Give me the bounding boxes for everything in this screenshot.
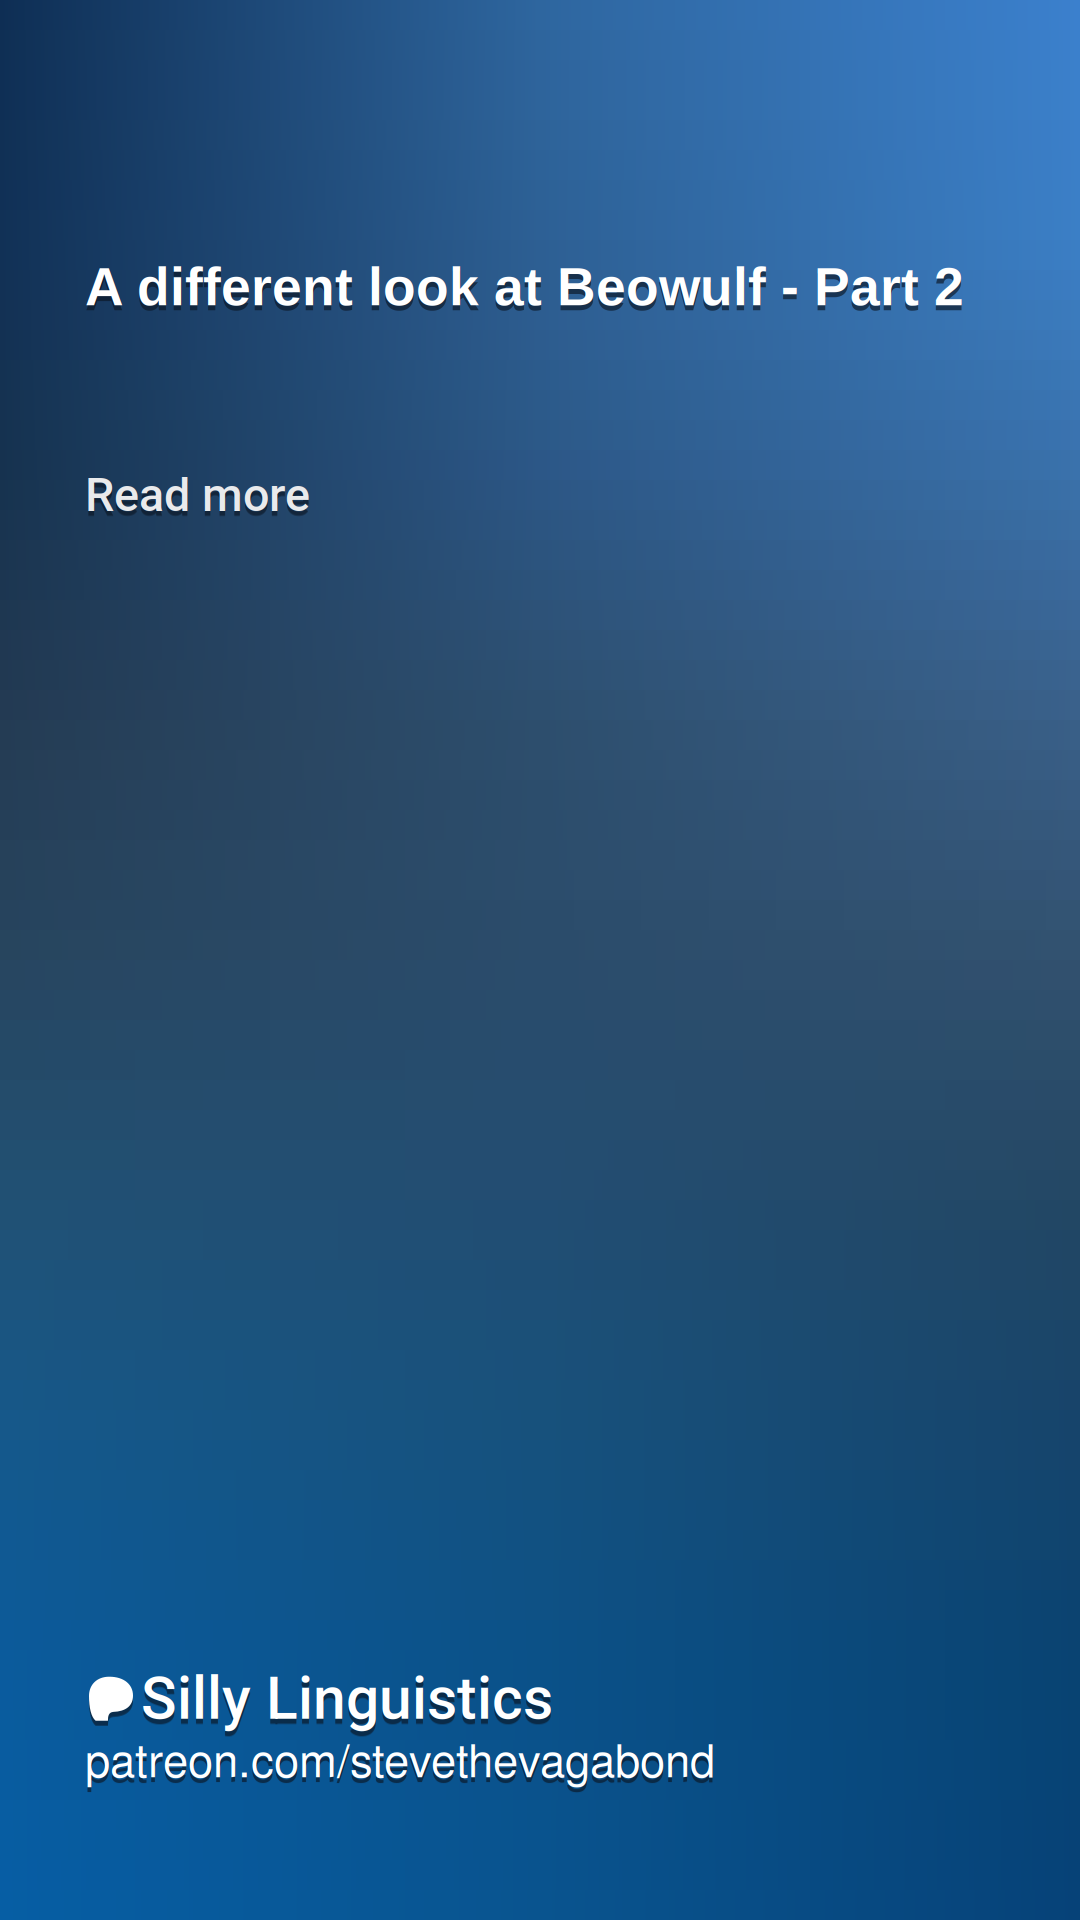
staticText: A different look at Beowulf - Part 2 bbox=[85, 257, 964, 317]
staticText: Read more bbox=[85, 468, 310, 522]
button[interactable]: Silly Linguistics bbox=[89, 1664, 553, 1733]
staticText: patreon.com/stevethevagabond bbox=[85, 1725, 715, 1790]
button[interactable]: patreon.com/stevethevagabond bbox=[89, 1725, 715, 1790]
button[interactable]: A different look at Beowulf - Part 2 bbox=[85, 257, 964, 317]
staticText: Silly Linguistics bbox=[141, 1664, 553, 1733]
button[interactable]: Read more bbox=[85, 468, 310, 522]
